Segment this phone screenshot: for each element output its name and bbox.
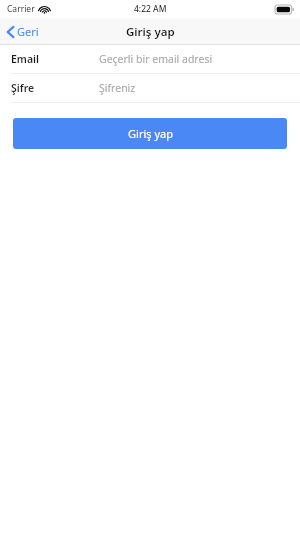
staticText: Şifreniz [99, 81, 136, 95]
staticText: Giriş yap [128, 126, 173, 141]
button[interactable]: Geri [0, 20, 47, 43]
button[interactable]: Email [0, 45, 300, 74]
staticText: Carrier [7, 3, 35, 15]
staticText: Giriş yap [126, 24, 175, 40]
button[interactable]: Giriş yap [13, 118, 287, 149]
staticText: Geri [17, 24, 39, 39]
staticText: Geçerli bir email adresi [99, 52, 213, 66]
staticText: Şifre [11, 81, 99, 95]
staticText: 4:22 AM [134, 3, 167, 15]
button[interactable]: Şifre [0, 74, 300, 103]
staticText: Email [11, 52, 99, 66]
